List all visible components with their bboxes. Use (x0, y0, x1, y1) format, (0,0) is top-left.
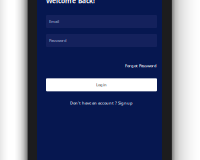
button[interactable]: Email (46, 15, 157, 28)
staticText: Email (49, 19, 59, 24)
staticText: Password (49, 38, 67, 43)
button[interactable]: Forgot Password (125, 63, 157, 68)
staticText: Login (96, 82, 107, 87)
button[interactable]: Login (46, 78, 157, 91)
staticText: Welcome Back! (46, 0, 95, 5)
button[interactable]: Password (46, 34, 157, 47)
button[interactable]: Don't have an account ? Signup (70, 100, 133, 106)
staticText: Forgot Password (125, 63, 157, 68)
staticText: Don't have an account ? Signup (70, 100, 133, 106)
